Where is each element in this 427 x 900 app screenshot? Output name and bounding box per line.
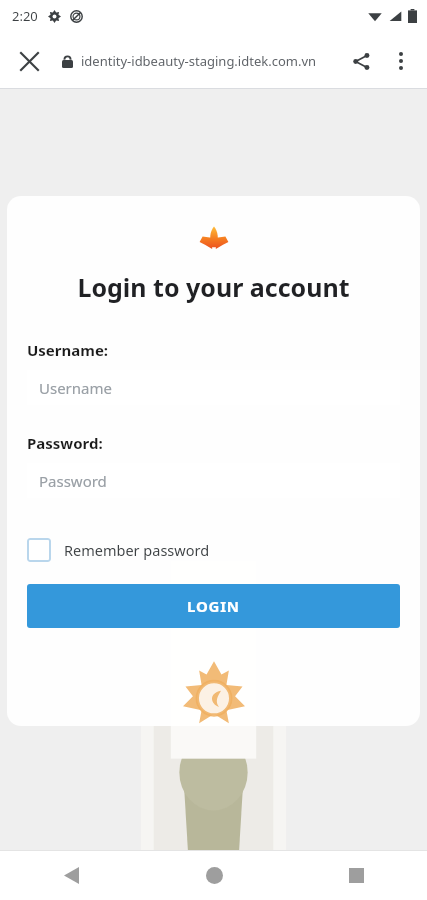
button[interactable]: Close (10, 42, 48, 80)
button[interactable]: identity-idbeauty-staging.idtek.com.vn (62, 41, 317, 81)
button[interactable]: Username (27, 370, 400, 405)
staticText: Password: (27, 433, 103, 453)
staticText: LOGIN (187, 596, 240, 616)
staticText: Remember password (64, 540, 210, 560)
button[interactable]: Share (341, 41, 381, 81)
button[interactable]: Back (0, 850, 143, 900)
staticText: identity-idbeauty-staging.idtek.com.vn (81, 52, 317, 70)
button[interactable]: More options (381, 41, 421, 81)
button[interactable]: LOGIN (27, 584, 400, 628)
button[interactable]: Recent apps (285, 850, 427, 900)
button[interactable]: Remember password (27, 536, 210, 564)
staticText: Password (39, 471, 107, 491)
button[interactable]: Home (143, 850, 285, 900)
staticText: Login to your account (27, 270, 400, 304)
button[interactable]: Password (27, 463, 400, 498)
staticText: Username (39, 378, 112, 398)
staticText: Username: (27, 340, 109, 360)
staticText: 2:20 (12, 7, 38, 25)
